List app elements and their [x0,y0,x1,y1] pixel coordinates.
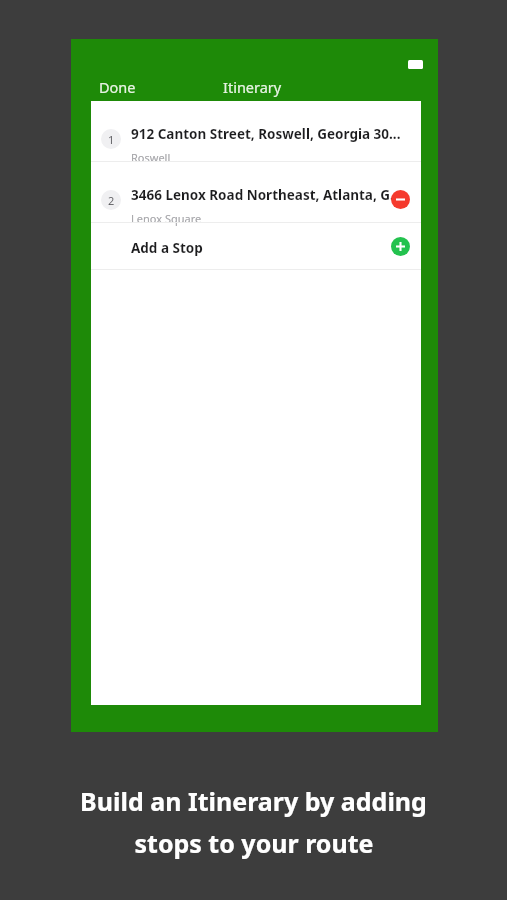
staticText: Lenox Square [131,211,202,226]
staticText: 912 Canton Street, Roswell, Georgia 30..… [131,125,401,143]
staticText: 1 [108,132,115,147]
button[interactable]: Done [95,73,140,101]
staticText: stops to your route [134,826,374,860]
staticText: Add a Stop [131,239,203,257]
staticText: 3466 Lenox Road Northeast, Atlanta, G... [131,186,402,204]
staticText: Roswell [131,150,171,165]
other: Battery [408,60,423,69]
staticText: Build an Itinerary by adding [80,784,427,818]
staticText: 2 [108,193,115,208]
staticText: Done [99,77,136,97]
button[interactable]: 1 [91,101,421,161]
button[interactable]: Add a stop [391,237,410,256]
button[interactable]: Remove stop [391,190,410,209]
button[interactable]: Add a Stop [91,223,421,269]
staticText: Itinerary [223,77,282,97]
button[interactable]: 2 [91,162,421,222]
